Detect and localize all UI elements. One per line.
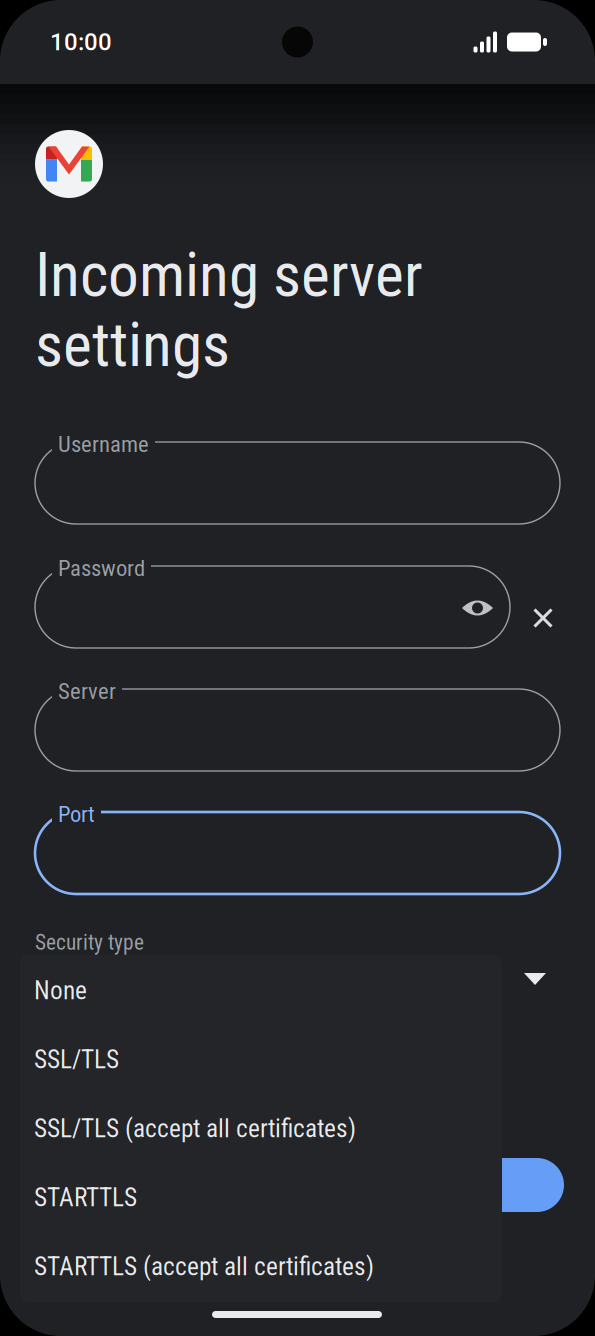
button[interactable]: STARTTLS [20,1163,502,1232]
button[interactable]: STARTTLS (accept all certificates) [20,1232,502,1301]
staticText: SSL/TLS [34,1045,119,1074]
staticText: None [34,976,87,1005]
button[interactable]: Show password [462,599,493,617]
staticText: Port [58,801,95,828]
staticText: Username [58,431,149,458]
button[interactable]: Security type menu [524,973,546,985]
staticText: STARTTLS (accept all certificates) [34,1252,374,1281]
staticText: Password [58,555,145,582]
staticText: settings [35,309,230,381]
staticText: 10:00 [50,28,112,56]
staticText: None [35,973,96,1007]
staticText: Server [58,678,116,705]
button[interactable]: Clear password [533,608,553,628]
button[interactable]: SSL/TLS (accept all certificates) [20,1094,502,1163]
staticText: SSL/TLS (accept all certificates) [34,1114,356,1143]
button[interactable]: SSL/TLS [20,1025,502,1094]
button[interactable]: Next [384,1158,564,1212]
staticText: STARTTLS [34,1183,137,1212]
staticText: Incoming server [35,239,423,311]
button[interactable]: None [20,956,502,1025]
staticText: Security type [35,930,144,955]
